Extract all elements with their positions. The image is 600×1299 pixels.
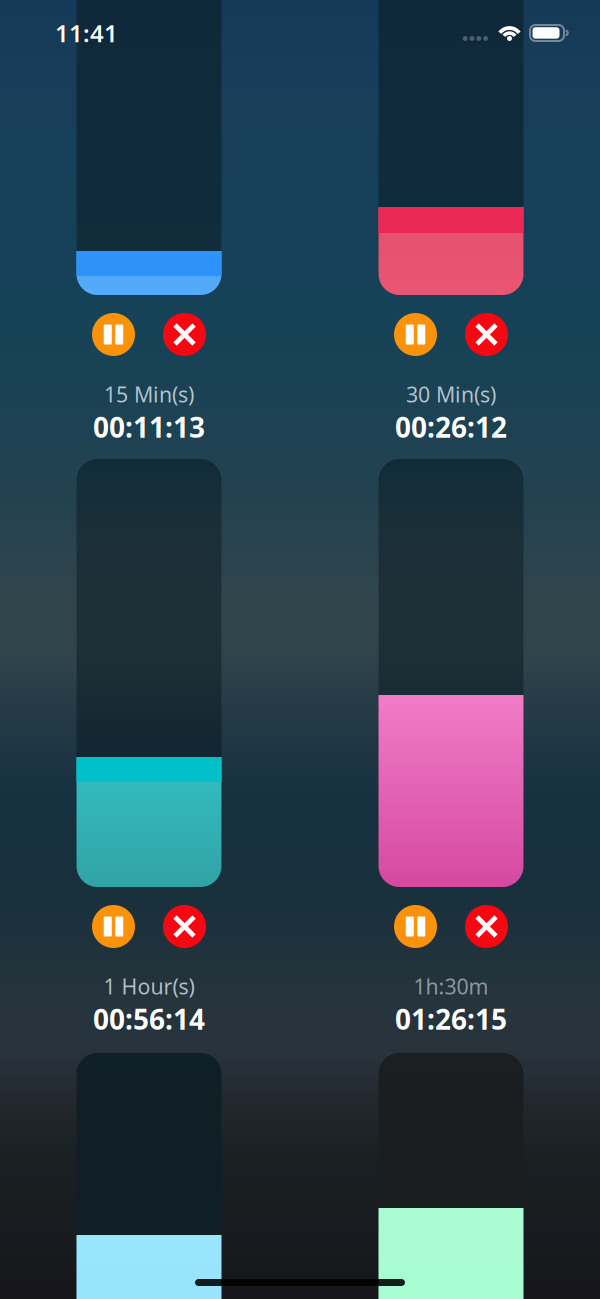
button[interactable]: Cancel timer [163, 313, 206, 356]
staticText: 00:26:12 [395, 408, 507, 445]
button[interactable]: Cancel timer [465, 313, 508, 356]
button[interactable]: Cancel timer [163, 905, 206, 948]
staticText: 00:56:14 [93, 1000, 205, 1037]
staticText: 1h:30m [413, 972, 488, 1000]
staticText: 11:41 [55, 17, 118, 49]
staticText: 01:26:15 [395, 1000, 507, 1037]
button[interactable]: Pause timer [394, 905, 437, 948]
button[interactable]: Cancel timer [465, 905, 508, 948]
staticText: 1 Hour(s) [103, 972, 194, 1000]
button[interactable]: Pause timer [394, 313, 437, 356]
button[interactable]: Pause timer [92, 313, 135, 356]
staticText: 00:11:13 [93, 408, 205, 445]
staticText: 30 Min(s) [406, 380, 496, 408]
button[interactable]: Pause timer [92, 905, 135, 948]
staticText: 15 Min(s) [104, 380, 194, 408]
